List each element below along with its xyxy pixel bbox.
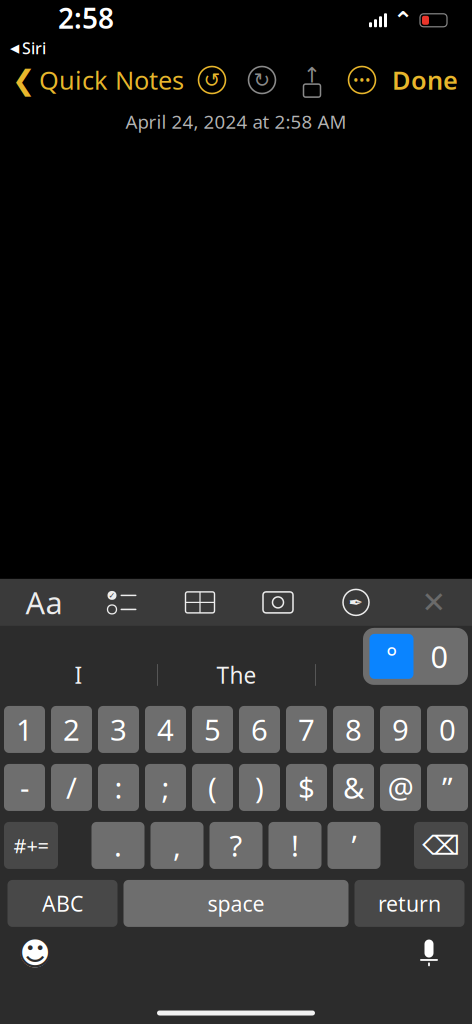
staticText: 1	[16, 710, 33, 749]
button[interactable]: -	[4, 764, 45, 811]
staticText: return	[378, 889, 441, 918]
staticText: Aa	[25, 582, 62, 623]
button[interactable]: Undo	[194, 62, 230, 98]
staticText: °	[386, 639, 397, 674]
button[interactable]: Close keyboard	[406, 581, 462, 623]
staticText: #+=	[13, 832, 48, 859]
button[interactable]: ”	[427, 764, 468, 811]
staticText: /	[66, 768, 77, 807]
button[interactable]: Share	[294, 62, 330, 98]
staticText: I	[74, 660, 82, 690]
staticText: 4	[157, 710, 174, 749]
button[interactable]: &	[333, 764, 374, 811]
button[interactable]: Camera	[250, 581, 306, 623]
staticText: !	[291, 826, 299, 865]
button[interactable]: 1	[4, 706, 45, 753]
staticText: )	[255, 768, 264, 807]
staticText: $	[298, 768, 315, 807]
button[interactable]: Done	[392, 57, 472, 103]
staticText: •••	[353, 70, 371, 90]
staticText: ◀	[10, 41, 19, 55]
button[interactable]: #+=	[4, 822, 58, 869]
staticText: space	[207, 889, 264, 918]
staticText: 3	[110, 710, 127, 749]
staticText: 6	[251, 710, 268, 749]
staticText: ✕	[421, 586, 446, 619]
button[interactable]: !	[268, 822, 321, 869]
button[interactable]: 4	[145, 706, 186, 753]
staticText: ;	[161, 768, 169, 807]
button[interactable]: Redo	[244, 62, 280, 98]
staticText: ☺	[17, 933, 53, 973]
button[interactable]: 0	[427, 706, 468, 753]
button[interactable]: .	[91, 822, 144, 869]
button[interactable]: 9	[380, 706, 421, 753]
staticText: ⌃	[393, 7, 413, 34]
button[interactable]: 7	[286, 706, 327, 753]
staticText: ”	[442, 768, 453, 807]
staticText: Siri	[22, 37, 46, 59]
staticText: ✒	[348, 593, 363, 612]
staticText: ↑	[303, 63, 321, 87]
staticText: 2:58	[58, 0, 114, 36]
staticText: ⌫	[422, 830, 460, 861]
staticText: &	[343, 768, 364, 807]
button[interactable]: return	[354, 880, 464, 927]
staticText: ?	[229, 826, 242, 865]
button[interactable]: space	[123, 880, 348, 927]
button[interactable]: I	[0, 649, 157, 701]
staticText: ABC	[42, 889, 83, 918]
button[interactable]: 6	[239, 706, 280, 753]
button[interactable]: $	[286, 764, 327, 811]
staticText: Quick Notes	[39, 63, 184, 97]
staticText: -	[20, 768, 29, 807]
button[interactable]: Table	[172, 581, 228, 623]
staticText: 9	[392, 710, 409, 749]
button[interactable]: More options	[344, 62, 380, 98]
staticText: ✓	[108, 591, 115, 600]
button[interactable]: /	[51, 764, 92, 811]
staticText: The	[216, 660, 256, 690]
button[interactable]: Dictation	[406, 930, 452, 976]
button[interactable]: Emoji	[12, 930, 58, 976]
button[interactable]: ,	[150, 822, 203, 869]
button[interactable]: Text formatting	[16, 581, 72, 623]
staticText: 7	[298, 710, 315, 749]
button[interactable]: ;	[145, 764, 186, 811]
staticText: 2	[63, 710, 80, 749]
staticText: April 24, 2024 at 2:58 AM	[125, 109, 346, 134]
button[interactable]: ’	[327, 822, 380, 869]
button[interactable]: ❮	[0, 57, 184, 103]
staticText: 0	[430, 636, 448, 677]
staticText: :	[114, 768, 122, 807]
staticText: ,	[173, 826, 181, 865]
button[interactable]: 8	[333, 706, 374, 753]
button[interactable]: )	[239, 764, 280, 811]
staticText: 5	[204, 710, 221, 749]
staticText: (	[208, 768, 217, 807]
button[interactable]: (	[192, 764, 233, 811]
staticText: Done	[392, 63, 458, 97]
staticText: .	[114, 826, 122, 865]
staticText: ’	[351, 826, 356, 865]
staticText: 8	[345, 710, 362, 749]
button[interactable]: 2	[51, 706, 92, 753]
button[interactable]: Checklist	[94, 581, 150, 623]
staticText: ↺	[203, 69, 220, 91]
button[interactable]: @	[380, 764, 421, 811]
staticText: ❮	[12, 64, 35, 96]
button[interactable]: ABC	[7, 880, 117, 927]
button[interactable]: ?	[209, 822, 262, 869]
button[interactable]: The	[158, 649, 315, 701]
staticText: ↻	[253, 69, 270, 91]
button[interactable]: Delete	[414, 822, 468, 869]
staticText: @	[387, 768, 413, 807]
button[interactable]: 5	[192, 706, 233, 753]
staticText: 0	[439, 710, 456, 749]
button[interactable]: Markup	[328, 581, 384, 623]
button[interactable]: 3	[98, 706, 139, 753]
button[interactable]: :	[98, 764, 139, 811]
